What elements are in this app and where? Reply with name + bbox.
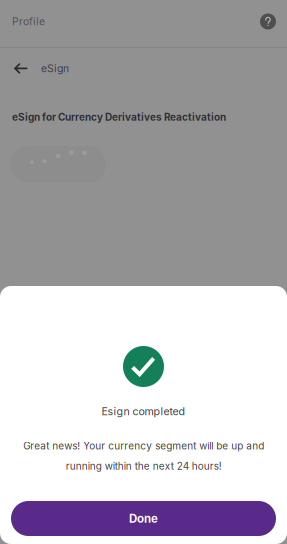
staticText: Done bbox=[129, 512, 158, 525]
staticText: Great news! Your currency segment will b… bbox=[23, 440, 264, 472]
staticText: eSign bbox=[41, 62, 69, 75]
staticText: eSign for Currency Derivatives Reactivat… bbox=[12, 111, 226, 123]
button[interactable]: Help bbox=[260, 13, 276, 29]
button[interactable]: Done bbox=[11, 501, 276, 536]
staticText: Profile bbox=[12, 15, 45, 28]
button[interactable]: Back bbox=[13, 60, 28, 76]
staticText: Esign completed bbox=[101, 405, 185, 418]
